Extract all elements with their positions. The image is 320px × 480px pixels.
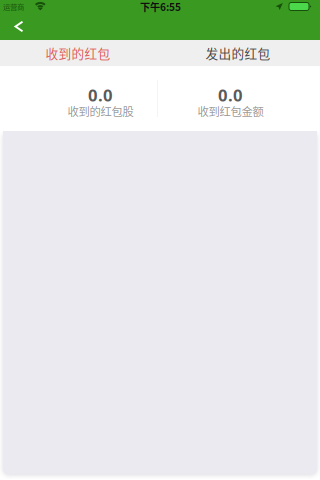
staticText: 收到红包金额 <box>197 103 263 119</box>
staticText: 收到的红包股 <box>67 103 133 119</box>
staticText: 0.0 <box>218 84 243 106</box>
staticText: 发出的红包 <box>205 44 270 62</box>
staticText: 下午6:55 <box>140 0 181 14</box>
button[interactable]: 收到的红包 <box>0 40 156 66</box>
staticText: 运营商 <box>3 1 24 12</box>
button[interactable]: Back <box>0 13 38 40</box>
staticText: 收到的红包 <box>45 44 110 62</box>
staticText: 0.0 <box>88 84 113 106</box>
button[interactable]: 发出的红包 <box>156 40 320 66</box>
